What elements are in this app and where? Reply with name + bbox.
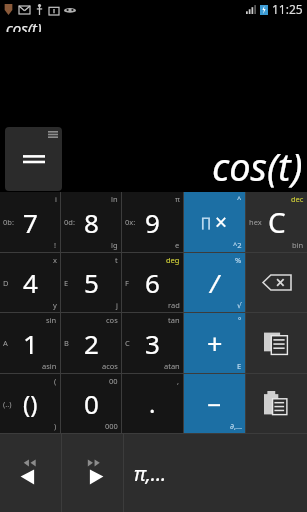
staticText: cos(t) — [212, 140, 303, 192]
button[interactable]: ( — [0, 374, 60, 433]
button[interactable]: deg — [122, 253, 183, 312]
staticText: 3 — [145, 326, 160, 361]
staticText: t — [115, 255, 118, 265]
button[interactable]: π,... — [124, 434, 307, 512]
button[interactable]: Plus — [184, 313, 245, 373]
staticText: 8 — [84, 205, 99, 240]
staticText: tan — [168, 315, 180, 325]
staticText: i — [55, 194, 57, 204]
staticText: ∏ — [201, 215, 211, 230]
button[interactable]: Move left — [0, 434, 61, 512]
button[interactable]: , — [122, 374, 183, 433]
button[interactable]: Paste — [246, 374, 307, 433]
staticText: (..) — [3, 399, 12, 409]
staticText: ° — [238, 315, 242, 325]
staticText: 7 — [23, 205, 38, 240]
button[interactable]: Copy — [246, 313, 307, 373]
button[interactable]: π — [122, 192, 183, 252]
staticText: A — [3, 338, 8, 348]
staticText: ∂,... — [230, 421, 242, 431]
staticText: ! — [54, 240, 57, 250]
staticText: % — [235, 255, 242, 265]
button[interactable]: tan — [122, 313, 183, 373]
staticText: cos — [106, 315, 118, 325]
button[interactable]: i — [0, 192, 60, 252]
button[interactable]: ln — [61, 192, 121, 252]
staticText: 9 — [145, 205, 160, 240]
staticText: ( — [54, 376, 57, 386]
staticText: lg — [111, 240, 118, 250]
button[interactable]: Multiply — [184, 192, 245, 252]
staticText: y — [53, 300, 57, 310]
staticText: rad — [168, 300, 180, 310]
button[interactable]: dec — [246, 192, 307, 252]
staticText: ln — [111, 194, 118, 204]
staticText: bin — [292, 240, 304, 250]
staticText: √ — [237, 301, 242, 310]
staticText: C — [268, 203, 286, 241]
staticText: x — [53, 255, 57, 265]
staticText: . — [149, 387, 156, 420]
staticText: j — [116, 300, 118, 310]
staticText: 6 — [145, 265, 160, 300]
staticText: 00 — [109, 376, 118, 386]
staticText: 0 — [84, 386, 99, 421]
staticText: 0d: — [64, 217, 75, 227]
staticText: cos(t) — [6, 18, 42, 32]
staticText: asin — [42, 361, 57, 371]
staticText: 5 — [84, 265, 99, 300]
staticText: B — [64, 338, 69, 348]
button[interactable]: cos — [61, 313, 121, 373]
staticText: sin — [46, 315, 57, 325]
staticText: 1 — [23, 326, 38, 361]
staticText: + — [207, 325, 223, 362]
staticText: D — [3, 278, 9, 288]
staticText: hex — [249, 217, 262, 227]
staticText: π — [175, 194, 180, 204]
staticText: 000 — [105, 421, 118, 431]
staticText: acos — [102, 361, 118, 371]
staticText: 0b: — [3, 217, 14, 227]
button[interactable]: Move right — [62, 434, 123, 512]
staticText: ^2 — [233, 240, 242, 250]
staticText: E — [64, 278, 69, 288]
staticText: F — [125, 278, 129, 288]
staticText: / — [210, 266, 219, 300]
staticText: e — [175, 240, 180, 250]
button[interactable]: t — [61, 253, 121, 312]
staticText: π,... — [134, 460, 167, 487]
button[interactable]: x — [0, 253, 60, 312]
staticText: ^ — [237, 194, 242, 204]
staticText: deg — [166, 255, 180, 265]
staticText: 2 — [84, 326, 99, 361]
staticText: − — [207, 387, 222, 421]
button[interactable]: Divide — [184, 253, 245, 312]
staticText: atan — [164, 361, 180, 371]
staticText: 11:25 — [272, 1, 303, 17]
staticText: , — [177, 376, 180, 386]
staticText: dec — [291, 194, 304, 204]
button[interactable]: Minus — [184, 374, 245, 433]
button[interactable]: 00 — [61, 374, 121, 433]
button[interactable]: Equals — [5, 127, 62, 191]
staticText: C — [125, 338, 130, 348]
staticText: () — [23, 387, 38, 420]
staticText: ) — [54, 421, 57, 431]
staticText: 4 — [23, 265, 38, 300]
staticText: 0x: — [125, 217, 136, 227]
button[interactable]: sin — [0, 313, 60, 373]
staticText: × — [215, 208, 228, 237]
staticText: E — [237, 361, 242, 371]
button[interactable]: Backspace — [246, 253, 307, 312]
